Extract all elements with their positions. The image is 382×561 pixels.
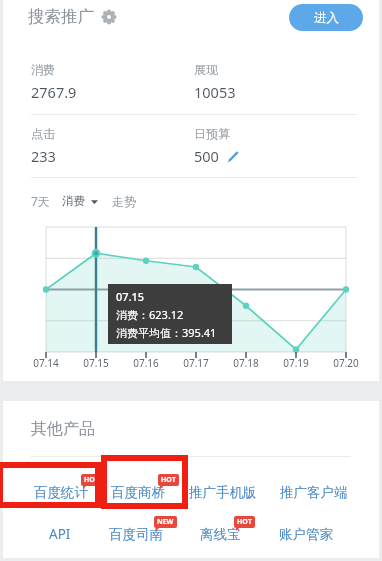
staticText: NEW (157, 517, 174, 527)
button[interactable]: 推广客户端 (276, 481, 352, 504)
button[interactable]: 编辑日预算 (226, 150, 239, 163)
staticText: 消费平均值：395.41 (116, 325, 217, 340)
staticText: 7天 (31, 193, 50, 209)
staticText: 展现 (194, 62, 218, 77)
button[interactable]: 百度司南 (105, 523, 167, 546)
staticText: HOT (161, 475, 176, 485)
staticText: 07.14 (33, 356, 59, 370)
staticText: 日预算 (194, 126, 230, 141)
staticText: 07.20 (333, 356, 359, 370)
button[interactable]: API (45, 522, 75, 546)
staticText: 2767.9 (31, 82, 77, 102)
staticText: 消费：623.12 (116, 307, 184, 322)
staticText: HOT (84, 475, 99, 485)
button[interactable]: 设置 (101, 9, 116, 24)
staticText: 百度商桥 (111, 484, 165, 501)
staticText: 点击 (31, 126, 55, 141)
staticText: 搜索推广 (28, 6, 94, 27)
staticText: 消费 (62, 194, 85, 208)
button[interactable]: 百度统计 (30, 481, 92, 504)
staticText: 07.18 (233, 356, 259, 370)
staticText: 07.15 (116, 289, 145, 304)
staticText: 233 (31, 146, 56, 166)
staticText: 10053 (194, 82, 236, 102)
staticText: 走势 (112, 194, 136, 209)
staticText: 07.19 (283, 356, 309, 370)
button[interactable]: 离线宝 (196, 523, 245, 546)
staticText: 离线宝 (200, 526, 241, 543)
staticText: 百度统计 (34, 484, 88, 501)
staticText: 消费 (31, 62, 55, 77)
staticText: 500 (194, 146, 219, 166)
staticText: 百度司南 (109, 526, 163, 543)
staticText: 07.16 (133, 356, 159, 370)
staticText: 07.15 (83, 356, 109, 370)
staticText: 账户管家 (279, 526, 333, 543)
staticText: API (49, 525, 71, 543)
staticText: HOT (237, 517, 252, 527)
staticText: 推广手机版 (189, 484, 257, 501)
staticText: 进入 (314, 10, 339, 26)
button[interactable]: 推广手机版 (185, 481, 261, 504)
button[interactable]: 账户管家 (275, 523, 337, 546)
staticText: 07.17 (183, 356, 209, 370)
button[interactable]: 百度商桥 (107, 481, 169, 504)
staticText: 推广客户端 (280, 484, 348, 501)
button[interactable]: 消费 (57, 192, 103, 210)
button[interactable]: 进入 (289, 4, 363, 31)
staticText: 其他产品 (31, 419, 95, 439)
